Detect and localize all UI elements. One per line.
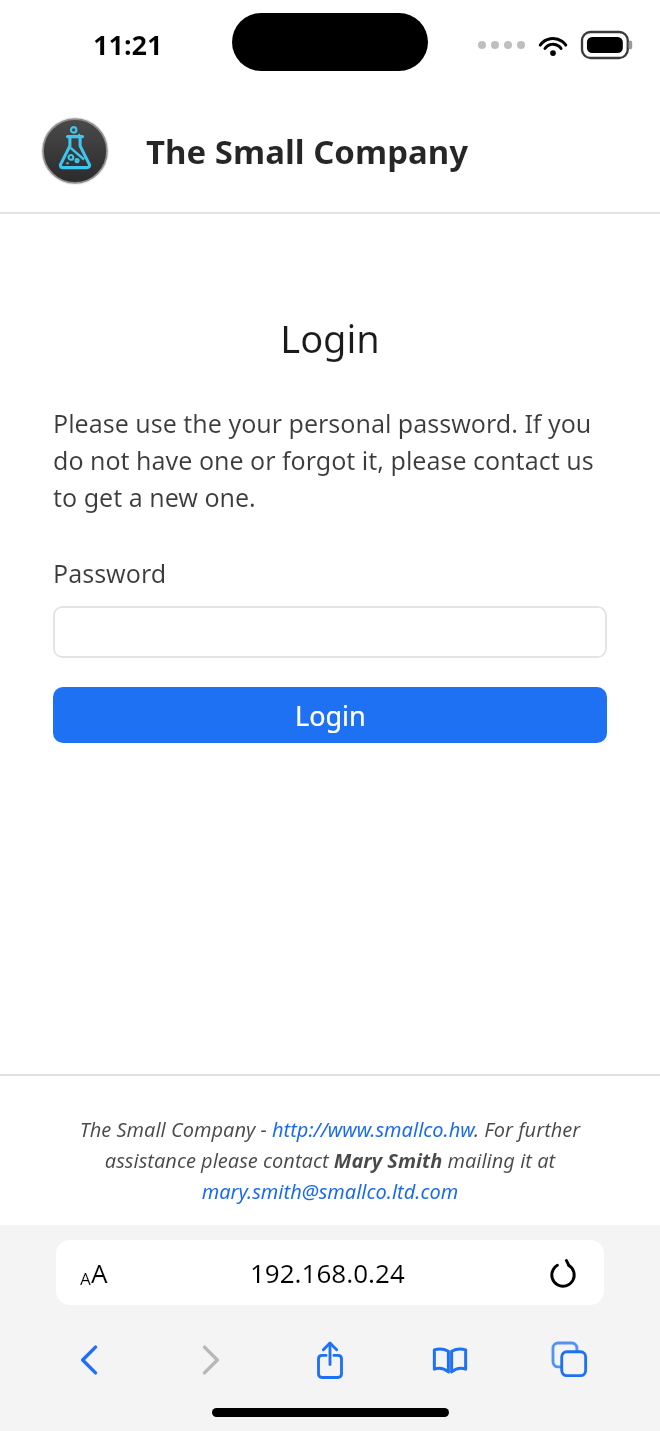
staticText: Please use the your personal password. I…: [53, 406, 610, 514]
staticText: A: [80, 1267, 91, 1290]
staticText: Password: [53, 556, 167, 590]
staticText: 192.168.0.24: [250, 1255, 405, 1290]
staticText: 11:21: [93, 26, 163, 63]
button[interactable]: Share: [270, 1327, 390, 1393]
button[interactable]: Text size: [56, 1240, 604, 1305]
staticText: Login: [0, 312, 660, 364]
button[interactable]: Text size: [80, 1255, 108, 1290]
button[interactable]: Back: [30, 1327, 150, 1393]
staticText: Login: [295, 697, 366, 734]
button[interactable]: [53, 606, 607, 658]
button[interactable]: Login: [53, 687, 607, 743]
button[interactable]: The Small Company - http://www.smallco.h…: [40, 1116, 620, 1205]
staticText: A: [91, 1255, 108, 1290]
staticText: The Small Company: [146, 129, 469, 174]
button[interactable]: Bookmarks: [390, 1327, 510, 1393]
button[interactable]: Reload: [546, 1256, 580, 1290]
button[interactable]: Tabs: [510, 1327, 630, 1393]
button[interactable]: Forward: [150, 1327, 270, 1393]
